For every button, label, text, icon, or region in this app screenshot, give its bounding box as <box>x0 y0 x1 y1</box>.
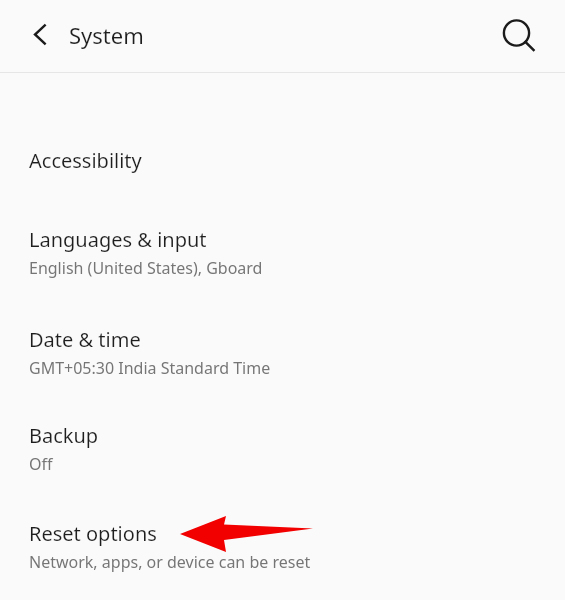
staticText: Reset options <box>29 520 157 547</box>
staticText: English (United States), Gboard <box>29 257 263 279</box>
button[interactable]: Backup <box>0 410 565 486</box>
staticText: Off <box>29 453 53 475</box>
staticText: Accessibility <box>29 147 142 174</box>
button[interactable]: Accessibility <box>0 134 565 186</box>
button[interactable]: Date & time <box>0 314 565 390</box>
button[interactable]: Back <box>20 15 59 54</box>
button[interactable]: Languages & input <box>0 214 565 290</box>
button[interactable]: Reset options <box>0 508 565 584</box>
staticText: Date & time <box>29 326 141 353</box>
staticText: Languages & input <box>29 226 207 253</box>
button[interactable]: Search <box>495 13 539 57</box>
staticText: System <box>69 20 144 50</box>
staticText: Backup <box>29 422 99 449</box>
staticText: Network, apps, or device can be reset <box>29 551 311 573</box>
staticText: GMT+05:30 India Standard Time <box>29 357 271 379</box>
